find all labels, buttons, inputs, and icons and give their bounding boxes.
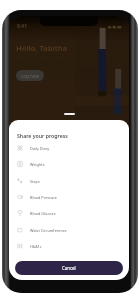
button[interactable]: Blood Pressure	[9, 189, 129, 205]
staticText: Log now	[21, 73, 39, 79]
staticText: Steps	[30, 179, 40, 184]
button[interactable]: Log now	[16, 70, 44, 81]
button[interactable]: Blood Glucose	[9, 205, 129, 221]
staticText: Waist Circumference	[30, 228, 67, 233]
button[interactable]: Steps	[9, 173, 129, 189]
staticText: Hello, Tabitha	[16, 43, 68, 53]
staticText: Blood Glucose	[30, 211, 56, 216]
staticText: HbA1c	[30, 244, 42, 249]
staticText: Blood Pressure	[30, 195, 57, 200]
button[interactable]: Daily Diary	[9, 140, 129, 156]
staticText: Weights	[30, 162, 45, 167]
staticText: Share your progress	[17, 132, 68, 139]
staticText: Cancel	[62, 265, 76, 271]
button[interactable]: Cancel	[15, 261, 123, 275]
button[interactable]: Weights	[9, 156, 129, 172]
button[interactable]: Waist Circumference	[9, 222, 129, 238]
staticText: 9:41	[17, 23, 27, 30]
staticText: Daily Diary	[30, 146, 50, 151]
button[interactable]: HbA1c	[9, 238, 129, 254]
